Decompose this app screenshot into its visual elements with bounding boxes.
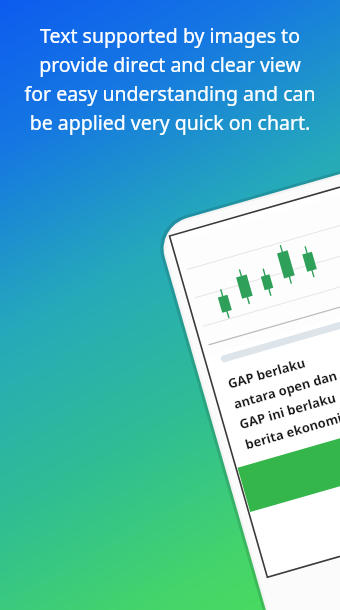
button[interactable]: Phone showing chart app screenshot [0,0,340,610]
button[interactable]: Text supported by images to provide dire… [8,22,332,135]
staticText: Text supported by images to provide dire… [8,22,332,135]
